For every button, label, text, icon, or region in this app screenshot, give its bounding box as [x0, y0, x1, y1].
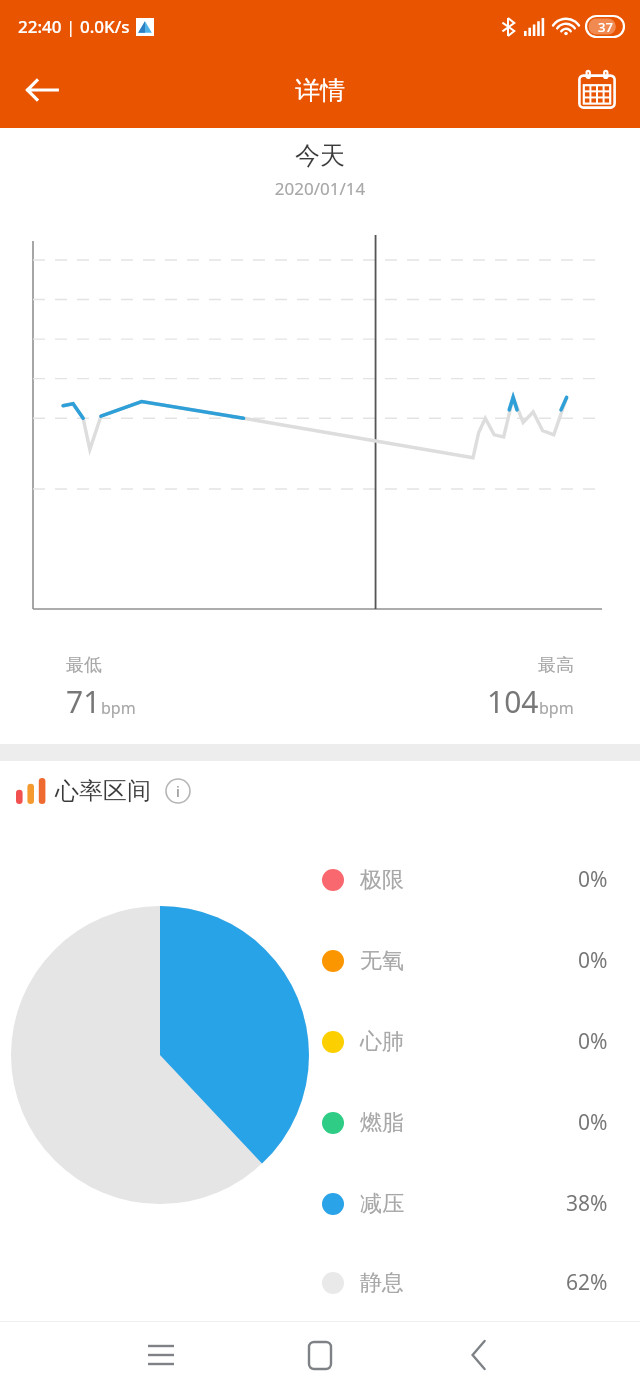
- staticText: bpm: [539, 697, 574, 719]
- button[interactable]: 极限: [322, 839, 608, 920]
- button[interactable]: Info: [161, 774, 195, 808]
- staticText: 无氧: [360, 947, 404, 975]
- staticText: 减压: [360, 1190, 404, 1218]
- staticText: 燃脂: [360, 1109, 404, 1137]
- staticText: bpm: [101, 697, 136, 719]
- button[interactable]: 无氧: [322, 920, 608, 1001]
- button[interactable]: 心肺: [322, 1001, 608, 1082]
- staticText: i: [176, 781, 180, 801]
- staticText: 心率区间: [55, 776, 151, 806]
- staticText: 62%: [566, 1268, 608, 1297]
- button[interactable]: Back: [10, 58, 74, 122]
- button[interactable]: Menu: [129, 1323, 193, 1387]
- staticText: 最高: [538, 654, 574, 677]
- staticText: 0%: [578, 1108, 608, 1137]
- staticText: 71: [66, 681, 101, 722]
- button[interactable]: 燃脂: [322, 1082, 608, 1163]
- staticText: 极限: [360, 866, 404, 894]
- staticText: 22:40: [18, 15, 62, 38]
- button[interactable]: Calendar: [566, 59, 628, 121]
- staticText: 静息: [360, 1269, 404, 1297]
- staticText: |: [62, 16, 80, 38]
- staticText: 104: [487, 681, 539, 722]
- staticText: 0%: [578, 1027, 608, 1056]
- button[interactable]: Home: [288, 1323, 352, 1387]
- staticText: 0%: [578, 946, 608, 975]
- staticText: 最低: [66, 654, 102, 677]
- staticText: 0%: [578, 865, 608, 894]
- button[interactable]: 减压: [322, 1163, 608, 1244]
- staticText: 2020/01/14: [0, 177, 640, 200]
- staticText: 38%: [566, 1189, 608, 1218]
- staticText: 心肺: [360, 1028, 404, 1056]
- button[interactable]: Back: [447, 1323, 511, 1387]
- staticText: 今天: [0, 140, 640, 171]
- staticText: 详情: [295, 75, 345, 106]
- staticText: 37: [598, 18, 613, 36]
- button[interactable]: 静息: [322, 1244, 608, 1321]
- staticText: 0.0K/s: [80, 15, 130, 38]
